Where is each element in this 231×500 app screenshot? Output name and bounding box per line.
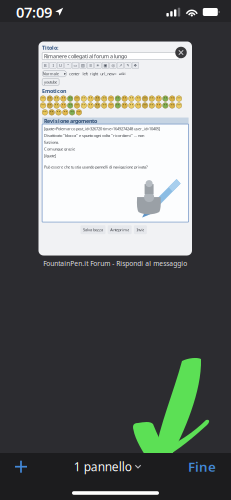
staticText: Normale ▾ (43, 71, 66, 76)
staticText: Emoticon (42, 87, 66, 94)
button[interactable]: 1 pannello (67, 452, 148, 482)
staticText: ▭ (73, 63, 77, 68)
staticText: FountainPen.it Forum - Rispondi al messa… (43, 259, 187, 268)
staticText: ↗ (119, 63, 122, 68)
staticText: left (82, 71, 87, 76)
staticText: ◎ (111, 63, 114, 68)
staticText: wiki (119, 71, 126, 76)
staticText: “ (67, 63, 68, 68)
staticText: U (59, 63, 62, 68)
staticText: B (44, 63, 47, 68)
staticText: Revisione argomento (44, 117, 97, 124)
button[interactable]: New tab (8, 454, 34, 480)
staticText: Disattivato "blocca" e spunto ogni volta… (44, 133, 144, 138)
staticText: 07:09 (16, 2, 52, 22)
button[interactable]: Invia (134, 225, 147, 234)
staticText: center (69, 71, 80, 76)
staticText: Anteprima (110, 227, 129, 232)
staticText: I (52, 63, 53, 68)
staticText: right (90, 71, 98, 76)
staticText: ▣ (103, 63, 107, 68)
staticText: ☀ (96, 63, 100, 68)
staticText: Può essere che tu stia usando pannelli d… (44, 164, 148, 169)
staticText: ≡ (89, 63, 92, 68)
staticText: ✎ (126, 63, 129, 68)
staticText: url_new= (100, 71, 116, 76)
staticText: Rimanere collegati al forum a lungo (44, 52, 127, 60)
button[interactable]: Fine (181, 451, 223, 482)
staticText: Titolo: (42, 44, 58, 51)
staticText: Fine (188, 458, 216, 475)
staticText: funziona. (44, 139, 59, 145)
button[interactable]: Salva bozza (80, 225, 105, 234)
button[interactable]: Anteprima (108, 225, 132, 234)
staticText: 1 pannello (74, 459, 132, 475)
staticText: [quote=Polemarco post_id=326720 time=164… (44, 126, 160, 131)
staticText: Comunque grazie (44, 146, 75, 151)
staticText: ❖ (133, 63, 137, 68)
staticText: youtube (44, 79, 57, 85)
button[interactable]: Close tab (172, 43, 190, 61)
staticText: ▤ (81, 63, 85, 68)
staticText: Invia (136, 227, 144, 232)
staticText: Salva bozza (83, 227, 103, 232)
staticText: [/quote] (44, 153, 56, 158)
